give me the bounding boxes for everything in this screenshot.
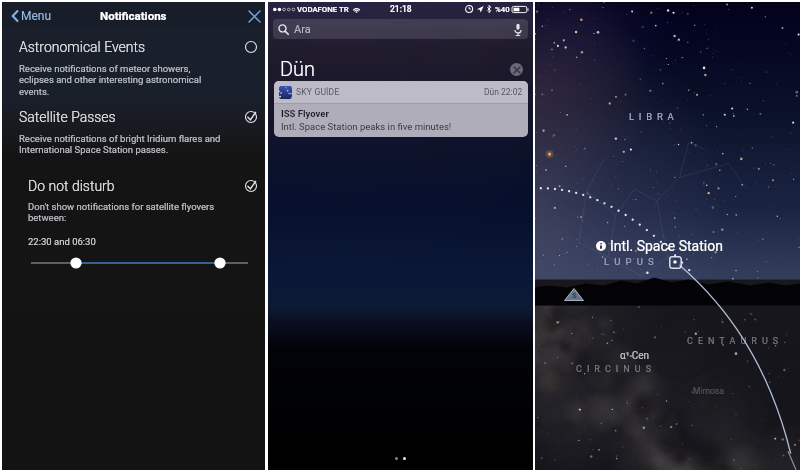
staticText: Receive notifications of meteor showers,…	[19, 63, 202, 97]
staticText: Do not disturb	[28, 178, 115, 194]
button[interactable]: Voice search	[511, 22, 525, 36]
staticText: Intl. Space Station	[610, 238, 723, 254]
button[interactable]: Enabled	[240, 106, 262, 128]
staticText: ISS Flyover	[281, 108, 329, 119]
staticText: Astronomical Events	[19, 39, 146, 55]
staticText: Mimosa	[693, 386, 724, 396]
button[interactable]: Disabled	[240, 36, 262, 58]
staticText: Receive notifications of bright Iridium …	[19, 133, 221, 155]
button[interactable]: Close	[243, 5, 265, 27]
staticText: C I R C I N U S	[576, 364, 653, 375]
staticText: 22:30 and 06:30	[28, 236, 96, 247]
staticText: VODAFONE TR	[297, 5, 349, 14]
staticText: Don't show notifications for satellite f…	[28, 201, 215, 223]
staticText: α¹ Cen	[620, 350, 650, 362]
staticText: Menu	[21, 9, 52, 23]
button[interactable]: Selected object	[669, 256, 682, 269]
staticText: Dün 22:02	[484, 87, 523, 97]
staticText: C E N T A U R U S	[687, 336, 780, 347]
button[interactable]: Menu	[2, 5, 58, 27]
button[interactable]: SKY GUİDE	[274, 81, 528, 137]
staticText: L I B R A	[629, 111, 675, 122]
staticText: 21:18	[390, 4, 412, 14]
button[interactable]: Clear notifications	[508, 61, 525, 78]
staticText: Ara	[294, 23, 311, 36]
button[interactable]: Intl. Space Station	[596, 238, 723, 254]
staticText: SKY GUİDE	[296, 87, 340, 97]
staticText: Intl. Space Station peaks in five minute…	[281, 121, 452, 132]
staticText: S	[572, 291, 577, 300]
staticText: L U P U S	[604, 256, 656, 267]
staticText: Notifications	[100, 9, 167, 22]
staticText: Dün	[280, 57, 316, 80]
button[interactable]: Ara	[273, 19, 528, 39]
button[interactable]: Enabled	[240, 175, 262, 197]
button[interactable]	[2, 252, 265, 274]
staticText: Satellite Passes	[19, 109, 116, 125]
staticText: %40	[495, 5, 510, 14]
